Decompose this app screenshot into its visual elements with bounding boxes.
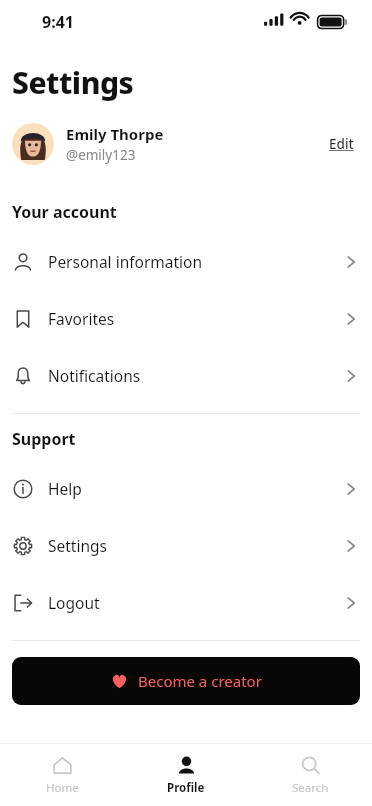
staticText: Edit [329, 135, 354, 153]
staticText: Search [292, 780, 329, 796]
button[interactable]: Become a creator [12, 657, 360, 705]
staticText: Logout [48, 592, 100, 613]
staticText: Help [48, 478, 82, 499]
staticText: Support [12, 428, 76, 450]
button[interactable]: Edit [323, 129, 360, 159]
button[interactable]: Favorites [0, 290, 372, 347]
staticText: Profile [167, 780, 205, 796]
staticText: Favorites [48, 308, 115, 329]
staticText: Become a creator [138, 671, 262, 691]
button[interactable]: Settings [0, 517, 372, 574]
button[interactable]: Profile [124, 744, 248, 806]
staticText: Settings [48, 535, 107, 556]
staticText: Home [46, 780, 79, 796]
button[interactable]: Logout [0, 574, 372, 631]
staticText: Your account [12, 201, 117, 223]
button[interactable]: Emily Thorpe [0, 123, 372, 165]
button[interactable]: Search [248, 744, 372, 806]
staticText: 9:41 [42, 11, 74, 33]
staticText: Settings [12, 62, 134, 103]
staticText: @emily123 [66, 146, 136, 164]
staticText: Personal information [48, 251, 203, 272]
button[interactable]: Home [0, 744, 124, 806]
button[interactable]: Personal information [0, 233, 372, 290]
staticText: Emily Thorpe [66, 124, 164, 144]
button[interactable]: Help [0, 460, 372, 517]
button[interactable]: Notifications [0, 347, 372, 404]
staticText: Notifications [48, 365, 141, 386]
